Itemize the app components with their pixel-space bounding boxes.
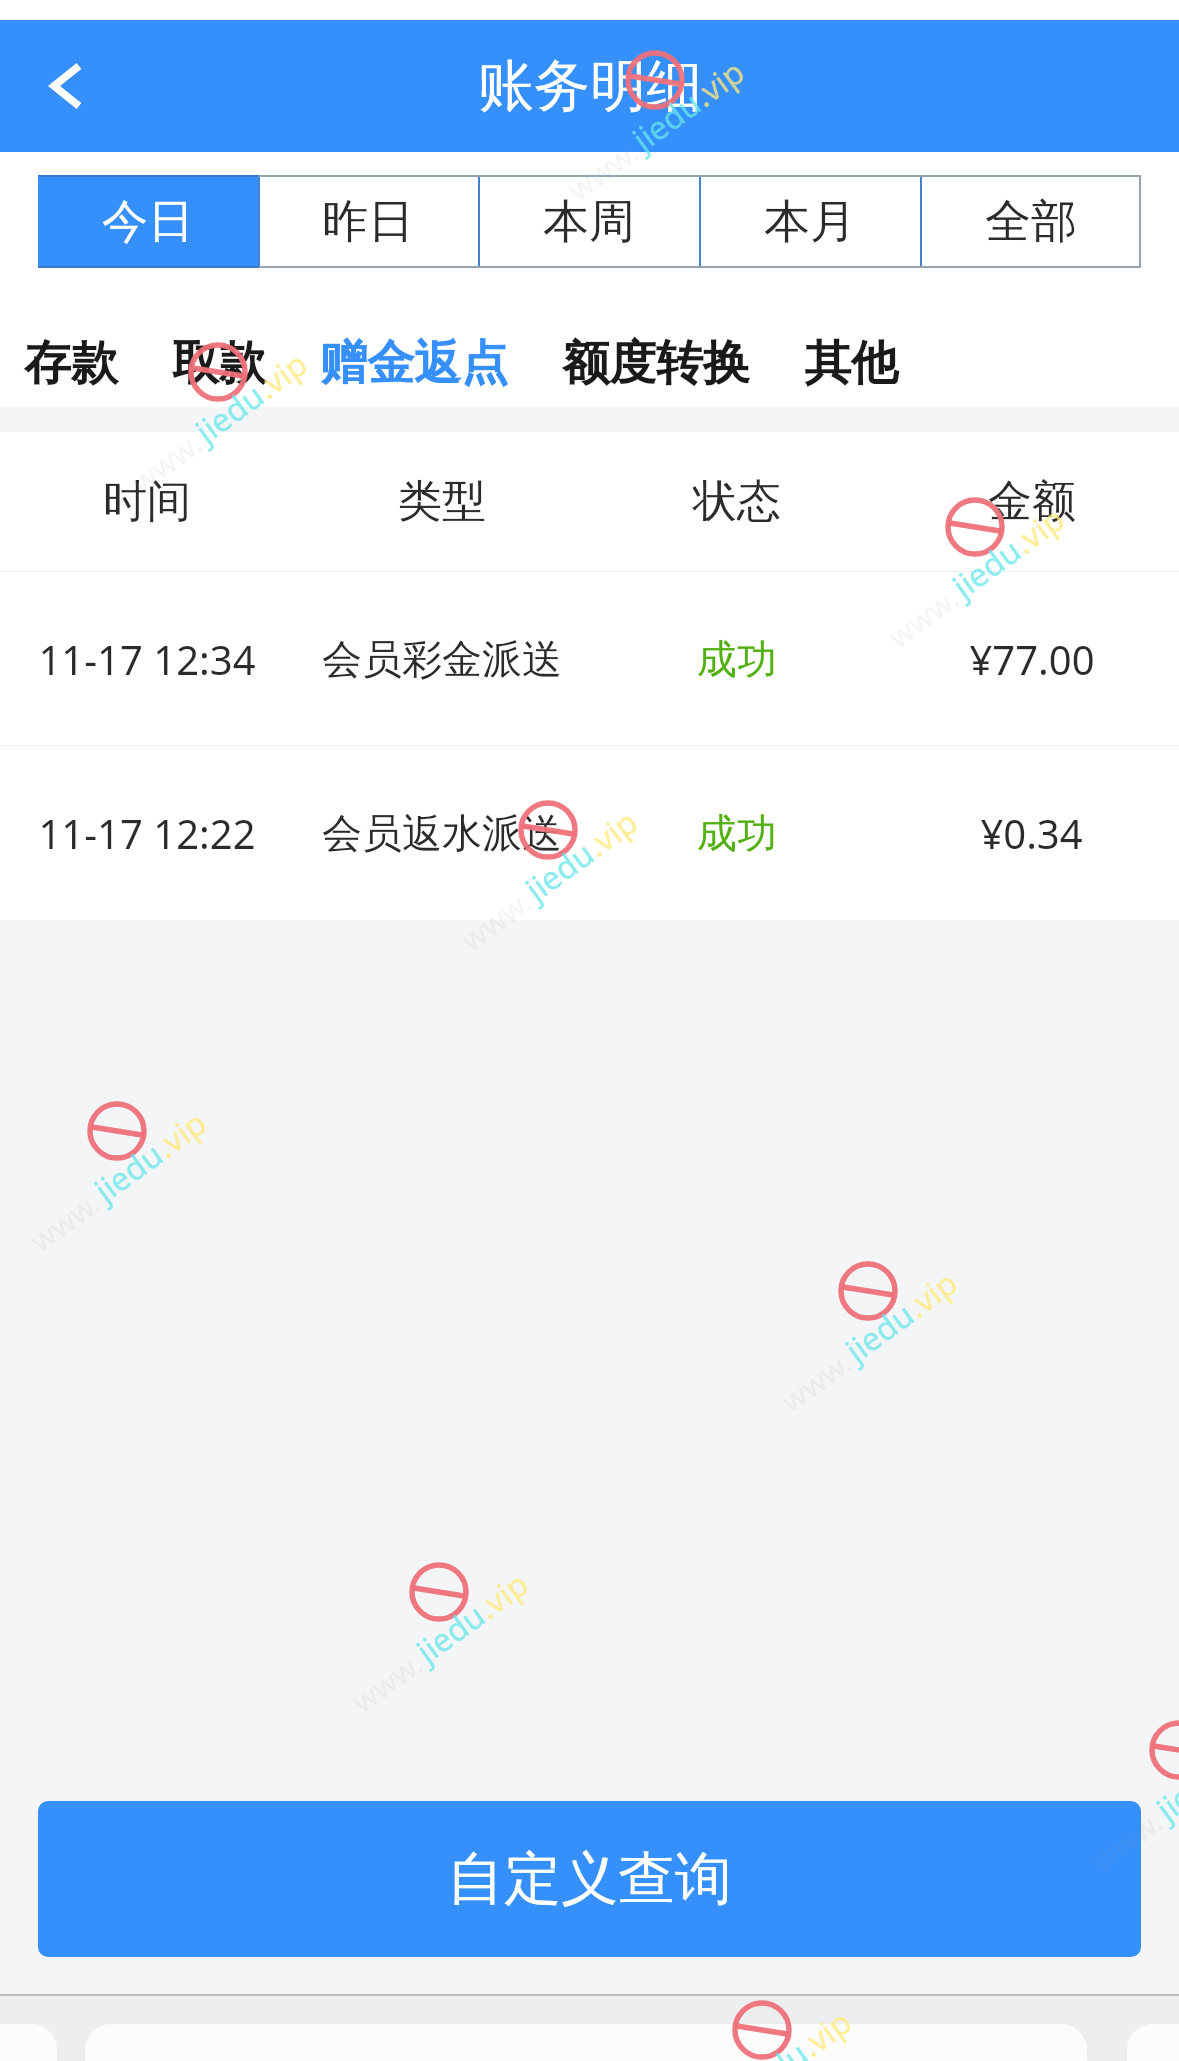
button[interactable]: 本周 [478,175,699,268]
staticText: 赠金返点 [320,334,508,393]
button[interactable]: 自定义查询 [38,1801,1141,1957]
button[interactable]: 全部 [920,175,1141,268]
staticText: 类型 [398,474,486,529]
button[interactable]: Back [0,20,125,152]
staticText: 昨日 [322,193,414,251]
staticText: 本月 [764,193,856,251]
staticText: 11-17 12:34 [38,632,256,686]
staticText: 全部 [985,193,1077,251]
button[interactable]: 其他 [804,334,898,393]
staticText: 自定义查询 [447,1843,732,1915]
staticText: 会员返水派送 [322,808,562,858]
button[interactable]: 本月 [699,175,920,268]
staticText: 取款 [172,334,266,393]
button[interactable]: 赠金返点 [320,334,508,393]
staticText: 额度转换 [562,334,750,393]
staticText: 其他 [804,334,898,393]
staticText: ¥0.34 [980,806,1083,860]
button[interactable]: 取款 [172,334,266,393]
staticText: 账务明细 [478,51,702,122]
staticText: 状态 [693,474,781,529]
staticText: 成功 [697,808,777,858]
staticText: ¥77.00 [969,632,1095,686]
button[interactable]: 昨日 [258,175,478,268]
staticText: 11-17 12:22 [38,806,256,860]
staticText: 存款 [24,334,118,393]
staticText: 本周 [543,193,635,251]
button[interactable]: 额度转换 [562,334,750,393]
staticText: 成功 [697,634,777,684]
button[interactable]: 存款 [24,334,118,393]
button[interactable]: 今日 [38,175,258,268]
staticText: 今日 [102,193,194,251]
staticText: 会员彩金派送 [322,634,562,684]
staticText: 时间 [103,474,191,529]
staticText: 金额 [988,474,1076,529]
